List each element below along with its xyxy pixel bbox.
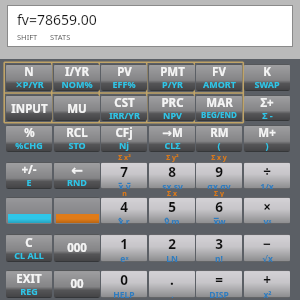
button[interactable]: N xyxy=(6,64,52,91)
button[interactable]: INPUT xyxy=(6,95,52,121)
staticText: HELP xyxy=(113,289,135,298)
staticText: MU xyxy=(67,101,87,117)
staticText: RCL xyxy=(66,125,88,141)
button[interactable]: = xyxy=(196,270,242,298)
staticText: RM xyxy=(210,125,229,141)
button[interactable]: ÷ xyxy=(244,162,290,189)
staticText: + xyxy=(263,271,271,289)
staticText: ) xyxy=(265,139,269,151)
staticText: x,r xyxy=(118,216,130,224)
button[interactable]: PMT xyxy=(149,64,195,91)
button[interactable]: 6 xyxy=(196,197,242,224)
staticText: PRC xyxy=(161,95,184,111)
staticText: 7 xyxy=(120,163,128,181)
staticText: P/YR xyxy=(162,78,183,90)
staticText: EFF% xyxy=(112,78,136,90)
button[interactable]: EXIT xyxy=(6,270,52,298)
button[interactable]: M+ xyxy=(244,125,290,152)
staticText: × xyxy=(263,198,271,216)
staticText: . xyxy=(170,271,174,289)
staticText: √x xyxy=(262,253,273,262)
staticText: +/- xyxy=(21,162,37,178)
button[interactable]: 7 xyxy=(101,162,147,189)
button[interactable]: C xyxy=(6,234,52,262)
staticText: NOM% xyxy=(61,78,93,90)
staticText: PMT xyxy=(160,64,185,80)
staticText: 2 xyxy=(168,235,176,253)
button[interactable]: Shift statistics xyxy=(54,197,100,224)
button[interactable]: 1 xyxy=(101,234,147,262)
staticText: yˣ xyxy=(263,216,272,224)
button[interactable]: FV xyxy=(196,64,242,91)
button[interactable]: CST xyxy=(101,95,147,121)
staticText: EXIT xyxy=(16,271,42,287)
staticText: M+ xyxy=(258,125,276,141)
button[interactable]: MAR xyxy=(196,95,242,121)
staticText: STATS xyxy=(50,32,71,42)
staticText: STO xyxy=(68,139,86,151)
button[interactable]: 9 xyxy=(196,162,242,189)
button[interactable]: PV xyxy=(101,64,147,91)
staticText: Σ x xyxy=(167,189,177,198)
staticText: 3 xyxy=(215,235,223,253)
button[interactable]: 0 xyxy=(101,270,147,298)
staticText: n xyxy=(122,189,127,198)
staticText: →M xyxy=(162,125,183,141)
staticText: ← xyxy=(71,162,83,178)
staticText: %CHG xyxy=(15,139,43,151)
staticText: 4 xyxy=(120,198,128,216)
button[interactable]: +/- xyxy=(6,162,52,189)
staticText: Σ y xyxy=(214,189,224,198)
button[interactable]: RM xyxy=(196,125,242,152)
staticText: = xyxy=(215,271,223,289)
button[interactable]: I/YR xyxy=(54,64,100,91)
staticText: Nj xyxy=(119,139,129,151)
button[interactable]: →M xyxy=(149,125,195,152)
button[interactable]: − xyxy=(244,234,290,262)
staticText: IRR/YR xyxy=(109,109,140,121)
staticText: ✕P/YR xyxy=(15,78,44,90)
button[interactable]: 4 xyxy=(101,197,147,224)
staticText: CL ALL xyxy=(14,249,44,261)
button[interactable]: MU xyxy=(54,95,100,121)
button[interactable]: 5 xyxy=(149,197,195,224)
staticText: FV xyxy=(212,64,226,80)
staticText: y,m xyxy=(164,216,180,224)
staticText: AMORT xyxy=(203,78,236,90)
button[interactable]: 3 xyxy=(196,234,242,262)
button[interactable]: K xyxy=(244,64,290,91)
staticText: CLΣ xyxy=(164,139,181,151)
staticText: REG xyxy=(20,285,38,297)
button[interactable]: 000 xyxy=(54,234,100,262)
button[interactable]: % xyxy=(6,125,52,152)
button[interactable]: × xyxy=(244,197,290,224)
button[interactable]: RCL xyxy=(54,125,100,152)
staticText: Σ - xyxy=(262,109,273,121)
staticText: x,y xyxy=(118,181,131,189)
staticText: 6 xyxy=(215,198,223,216)
staticText: 1/x xyxy=(260,181,274,189)
staticText: MAR xyxy=(206,95,233,111)
staticText: E xyxy=(26,176,32,188)
button[interactable]: . xyxy=(149,270,195,298)
staticText: CFj xyxy=(115,125,133,141)
button[interactable]: 8 xyxy=(149,162,195,189)
staticText: 5 xyxy=(168,198,176,216)
staticText: sx,sy xyxy=(162,181,183,189)
button[interactable]: Σ+ xyxy=(244,95,290,121)
button[interactable]: CFj xyxy=(101,125,147,152)
staticText: DISP xyxy=(209,289,229,298)
staticText: C xyxy=(25,235,33,251)
staticText: ( xyxy=(217,139,221,151)
button[interactable]: ← xyxy=(54,162,100,189)
staticText: Σ y² xyxy=(166,153,179,162)
button[interactable]: Shift function xyxy=(6,197,52,224)
button[interactable]: PRC xyxy=(149,95,195,121)
staticText: x² xyxy=(263,289,272,298)
staticText: I/YR xyxy=(65,64,89,80)
staticText: SHIFT xyxy=(17,32,38,42)
button[interactable]: 00 xyxy=(54,270,100,298)
staticText: ÷ xyxy=(263,163,271,181)
button[interactable]: + xyxy=(244,270,290,298)
button[interactable]: 2 xyxy=(149,234,195,262)
